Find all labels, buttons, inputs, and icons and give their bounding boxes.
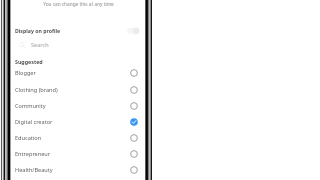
button[interactable]: Entrepreneur — [11, 146, 145, 162]
staticText: Health/Beauty — [15, 166, 53, 174]
button[interactable]: Clothing (brand) — [11, 82, 145, 98]
staticText: Clothing (brand) — [15, 86, 58, 94]
staticText: Education — [15, 134, 42, 142]
staticText: Search — [31, 41, 49, 49]
button[interactable]: Health/Beauty — [11, 162, 145, 178]
staticText: Display on profile — [15, 27, 61, 34]
staticText: Suggested — [15, 58, 43, 65]
button[interactable]: Digital creator — [11, 114, 145, 130]
button[interactable]: Display on profile — [11, 23, 145, 38]
staticText: Entrepreneur — [15, 150, 51, 158]
button[interactable]: Blogger — [11, 65, 145, 81]
button[interactable]: Search — [11, 38, 145, 52]
other: Display on profile toggle — [127, 28, 139, 34]
button[interactable]: Education — [11, 130, 145, 146]
other: Search — [19, 42, 26, 49]
staticText: Community — [15, 102, 46, 110]
staticText: Blogger — [15, 69, 36, 77]
staticText: You can change this at any time — [43, 1, 114, 7]
button[interactable]: Community — [11, 98, 145, 114]
staticText: Digital creator — [15, 118, 53, 126]
